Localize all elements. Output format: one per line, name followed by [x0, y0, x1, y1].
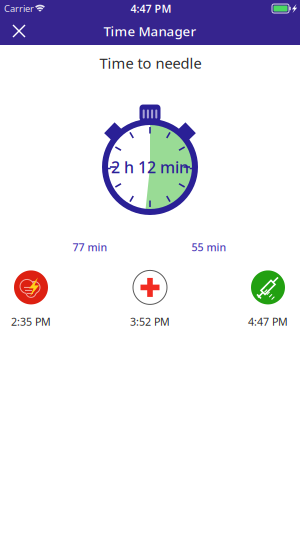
button[interactable]: Close — [4, 16, 34, 46]
button[interactable]: 4:47 PM — [231, 269, 300, 329]
staticText: -2 h 12 min- — [106, 156, 194, 178]
staticText: 55 min — [191, 240, 226, 254]
staticText: Time to needle — [99, 53, 201, 73]
staticText: 3:52 PM — [130, 314, 170, 329]
button[interactable]: 3:52 PM — [113, 269, 187, 329]
staticText: 2:35 PM — [11, 314, 51, 329]
staticText: 4:47 PM — [130, 1, 171, 16]
staticText: Time Manager — [103, 22, 196, 40]
staticText: 77 min — [72, 240, 107, 254]
button[interactable]: 2:35 PM — [0, 269, 68, 329]
staticText: Carrier — [4, 2, 34, 15]
staticText: 4:47 PM — [248, 314, 288, 329]
